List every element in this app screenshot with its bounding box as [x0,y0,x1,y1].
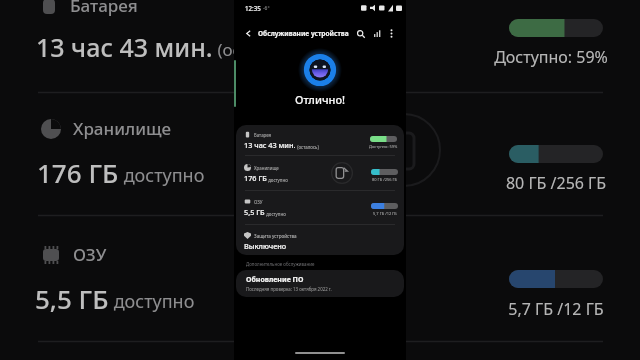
staticText: -6° [263,5,270,12]
staticText: Обновление ПО [246,275,304,285]
staticText: ОЗУ [254,199,263,205]
button[interactable]: Statistics [371,27,384,40]
staticText: Доступно: 59% [481,46,621,68]
staticText: Выключено [244,241,287,251]
button[interactable]: ОЗУ [236,191,404,224]
staticText: доступно [265,211,286,217]
staticText: Дополнительное обслуживание [246,261,315,267]
staticText: доступно [119,163,205,188]
staticText: Защита устройства [254,233,297,239]
staticText: Отлично! [295,92,346,107]
staticText: Батарея [70,0,138,17]
staticText: Доступно: 59% [369,144,398,149]
staticText: Обслуживание устройства [258,29,349,38]
staticText: ОЗУ [73,243,107,266]
staticText: 5,7 ГБ /12 ГБ [373,211,397,216]
button[interactable]: Обновление ПО [236,270,404,297]
staticText: 5,5 ГБ [35,281,109,316]
staticText: (осталось) [296,144,319,150]
staticText: Последняя проверка: 13 октября 2022 г. [246,286,332,292]
staticText: Хранилище [254,165,279,171]
staticText: 176 ГБ [37,155,119,190]
button[interactable]: Хранилище [236,156,404,190]
button[interactable]: Search [354,27,367,40]
button[interactable]: More options [385,27,398,40]
staticText: 13 час 43 мин. [244,140,296,150]
staticText: 5,7 ГБ /12 ГБ [486,298,626,320]
staticText: 80 ГБ /256 ГБ [372,177,398,182]
staticText: 176 ГБ [244,173,267,183]
staticText: Батарея [254,132,272,138]
staticText: Хранилище [73,117,172,140]
staticText: 12:35 [245,4,261,12]
staticText: 80 ГБ /256 ГБ [486,172,626,194]
staticText: (ос [213,38,241,61]
staticText: 5,5 ГБ [244,207,265,217]
button[interactable]: Back [242,27,255,40]
button[interactable]: Защита устройства [236,225,404,255]
staticText: доступно [267,177,288,183]
staticText: 13 час 43 мин. [36,30,213,64]
staticText: доступно [109,289,195,314]
button[interactable]: Батарея [236,125,404,155]
